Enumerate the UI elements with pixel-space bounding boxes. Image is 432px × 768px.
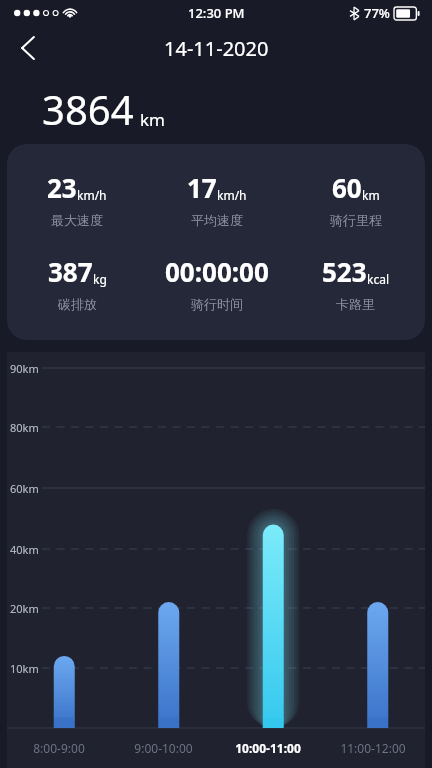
staticText: 17	[187, 170, 217, 205]
staticText: kcal	[367, 271, 389, 287]
staticText: 80km	[10, 420, 39, 435]
staticText: 骑行里程	[330, 212, 382, 228]
staticText: 20km	[10, 601, 39, 616]
staticText: 10km	[10, 661, 39, 676]
staticText: 77%	[364, 4, 390, 22]
staticText: 最大速度	[51, 212, 103, 228]
button[interactable]: Back	[6, 26, 50, 70]
staticText: km/h	[217, 187, 247, 203]
staticText: 387	[48, 254, 93, 289]
staticText: 碳排放	[58, 296, 97, 312]
staticText: 10:00-11:00	[235, 740, 301, 756]
staticText: 平均速度	[191, 212, 243, 228]
staticText: km/h	[77, 187, 107, 203]
staticText: 23	[47, 170, 77, 205]
staticText: 3864	[42, 82, 134, 136]
button[interactable]: 8:00-9:00	[7, 740, 111, 756]
staticText: 骑行时间	[191, 296, 243, 312]
staticText: 14-11-2020	[164, 35, 269, 62]
staticText: 60	[332, 170, 362, 205]
staticText: km	[362, 187, 380, 203]
staticText: 40km	[10, 542, 39, 557]
staticText: 11:00-12:00	[340, 740, 406, 756]
button[interactable]: 11:00-12:00	[320, 740, 425, 756]
button[interactable]: 9:00-10:00	[111, 740, 215, 756]
staticText: 90km	[10, 361, 39, 376]
staticText: kg	[93, 271, 107, 287]
staticText: 12:30 PM	[188, 4, 245, 22]
staticText: 卡路里	[336, 296, 375, 312]
button[interactable]: 10:00-11:00	[215, 740, 320, 756]
staticText: 523	[322, 254, 367, 289]
staticText: 8:00-9:00	[33, 740, 85, 756]
staticText: km	[140, 108, 165, 131]
staticText: 00:00:00	[165, 254, 269, 289]
staticText: 60km	[10, 481, 39, 496]
staticText: 9:00-10:00	[134, 740, 193, 756]
